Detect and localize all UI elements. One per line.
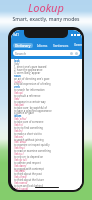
button[interactable]: Idioms: [37, 43, 48, 48]
staticText: to take care of someone: [14, 120, 44, 124]
staticText: /lʊk ˈɑːftə/: [14, 117, 27, 121]
staticText: /lʊk tuː/: [14, 152, 24, 156]
staticText: to turn and look behind: [14, 184, 43, 188]
staticText: to try to find something: [14, 126, 43, 130]
staticText: verb: [14, 85, 20, 89]
staticText: 9:41: [13, 33, 19, 37]
staticText: /lʊk ˈəʊvə/: [14, 140, 27, 144]
staticText: to think about the past: [14, 172, 42, 176]
staticText: look: [14, 59, 20, 63]
staticText: 1. direct one's gaze toward: [14, 65, 47, 69]
staticText: to appear in a certain way: [14, 100, 46, 104]
staticText: noun: [14, 74, 21, 78]
staticText: /lʊk θruː/: [14, 146, 26, 150]
staticText: Search: [15, 51, 27, 56]
staticText: idiom: [14, 114, 22, 118]
staticText: a facial expression of a feeling: [14, 82, 51, 86]
button[interactable]: Camera search: [75, 52, 78, 55]
staticText: /lʊk ɒn/: [14, 135, 24, 139]
button[interactable]: Grammar: [74, 43, 82, 48]
staticText: Dictionary: [15, 44, 31, 48]
staticText: to rely on; to depend on: [14, 155, 44, 159]
staticText: Smart, exactly, many modes: [12, 16, 80, 23]
staticText: a glance or gaze: [14, 111, 34, 115]
staticText: to regard with contempt: [14, 167, 44, 171]
staticText: Lookup: [28, 0, 64, 15]
staticText: /lʊk bæk/: [14, 169, 26, 173]
staticText: /lʊk/: [14, 97, 20, 101]
staticText: to search for information: [14, 88, 45, 92]
staticText: to read or examine something: [14, 149, 51, 153]
staticText: /lʊk ɪn/: [14, 129, 23, 133]
staticText: to consult a reference: [14, 94, 41, 98]
staticText: /lʊk daʊn/: [14, 164, 27, 168]
staticText: Idioms: [37, 44, 48, 48]
staticText: to examine or inspect quickly: [14, 143, 50, 147]
staticText: /lʊk ʌp tuː/: [14, 158, 28, 162]
button[interactable]: Search: [13, 50, 80, 56]
staticText: 2. have the appearance: [14, 68, 43, 72]
staticText: /lʊk raʊnd/: [14, 181, 28, 185]
staticText: to have a specified appearance: [14, 109, 52, 113]
staticText: Grammar: [74, 43, 82, 48]
staticText: /lʊk ʌp/: [14, 91, 24, 95]
button[interactable]: Dictionary: [15, 43, 31, 48]
staticText: /lʊk aʊt/: [14, 103, 25, 107]
staticText: to watch without joining: [14, 138, 44, 142]
staticText: /lʊk əˈhed/: [14, 175, 27, 179]
staticText: /lʊk/: [14, 62, 20, 66]
staticText: an act of directing one's gaze: [14, 77, 50, 81]
staticText: /lʊk fɔː/: [14, 123, 24, 127]
staticText: /lʊk fɔːwəd/: [14, 187, 29, 190]
staticText: to think about the future: [14, 178, 45, 182]
button[interactable]: Sentences: [53, 43, 69, 48]
staticText: to admire and respect: [14, 161, 41, 165]
button[interactable]: Voice search: [70, 52, 73, 55]
staticText: /ə lʊk/: [14, 80, 22, 84]
staticText: Sentences: [53, 44, 69, 48]
staticText: to make a short visit to: [14, 132, 42, 136]
staticText: to take care; be watchful of: [14, 106, 47, 110]
staticText: 3. seem likely; appear: [14, 71, 41, 75]
